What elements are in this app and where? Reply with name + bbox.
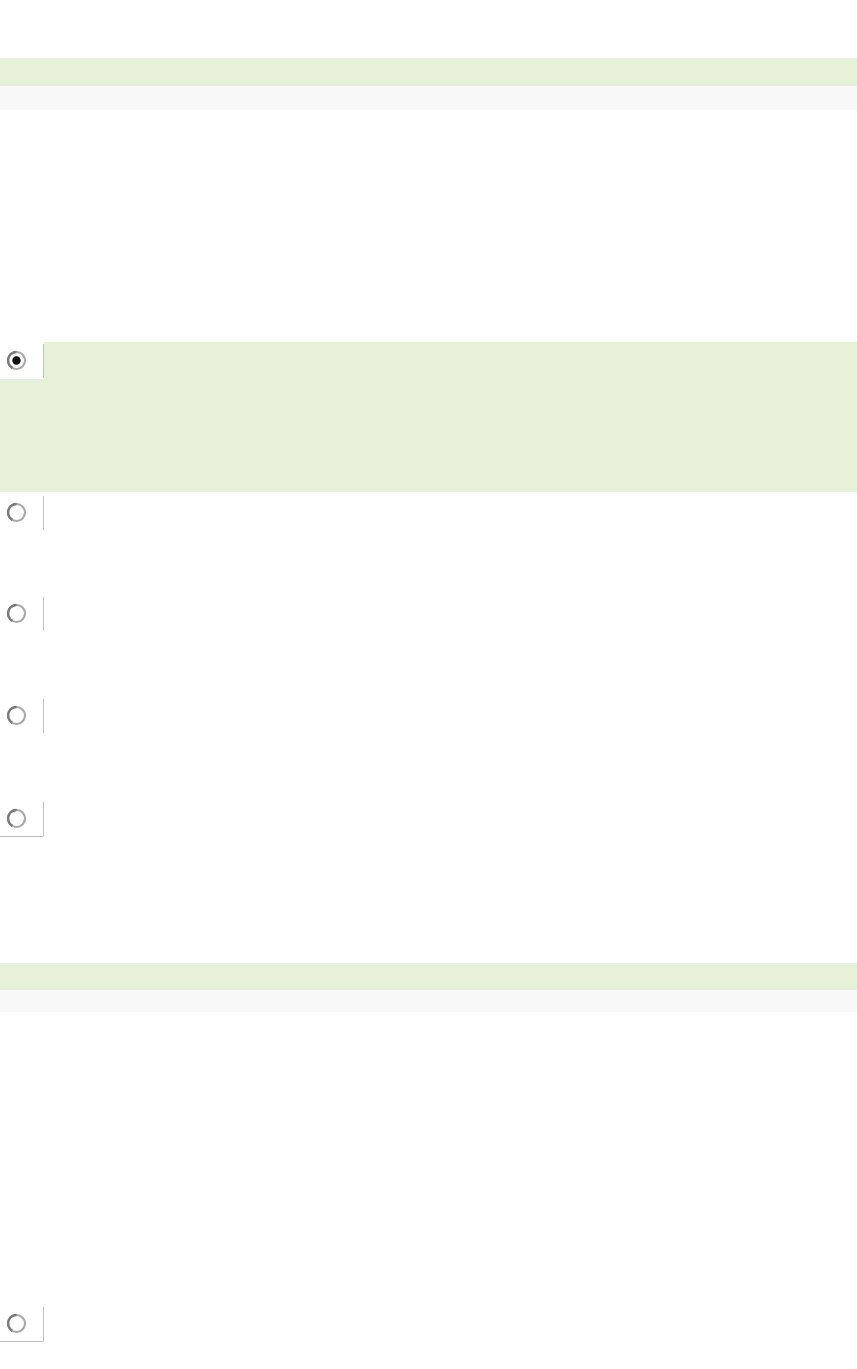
button[interactable]: Option 5: [0, 800, 44, 837]
button[interactable]: Option 6: [0, 1305, 44, 1342]
button[interactable]: Option 3: [0, 595, 44, 632]
button[interactable]: Option 4: [0, 697, 44, 734]
button[interactable]: Option 1: [0, 342, 44, 379]
button[interactable]: Option 2: [0, 494, 44, 531]
